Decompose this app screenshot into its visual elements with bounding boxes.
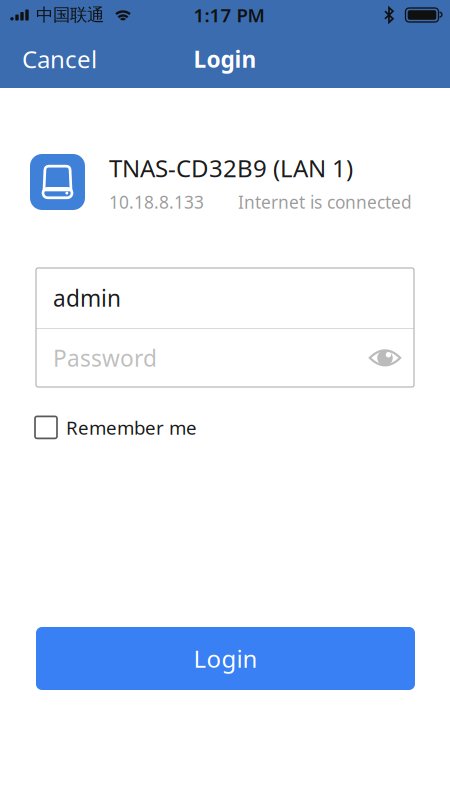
staticText: Internet is connected — [238, 190, 412, 213]
button[interactable]: Show password — [362, 333, 408, 383]
staticText: 1:17 PM — [193, 3, 264, 27]
staticText: Login — [193, 643, 257, 674]
staticText: admin — [53, 283, 121, 313]
staticText: Login — [193, 44, 256, 74]
button[interactable]: Login — [36, 627, 415, 690]
staticText: Cancel — [22, 43, 97, 75]
staticText: TNAS-CD32B9 (LAN 1) — [109, 152, 353, 184]
staticText: Remember me — [66, 415, 197, 440]
staticText: Password — [53, 343, 157, 373]
staticText: 10.18.8.133 — [109, 190, 204, 213]
button[interactable]: Cancel — [0, 30, 119, 88]
button[interactable]: Remember me — [35, 415, 197, 440]
staticText: 中国联通 — [36, 4, 104, 26]
